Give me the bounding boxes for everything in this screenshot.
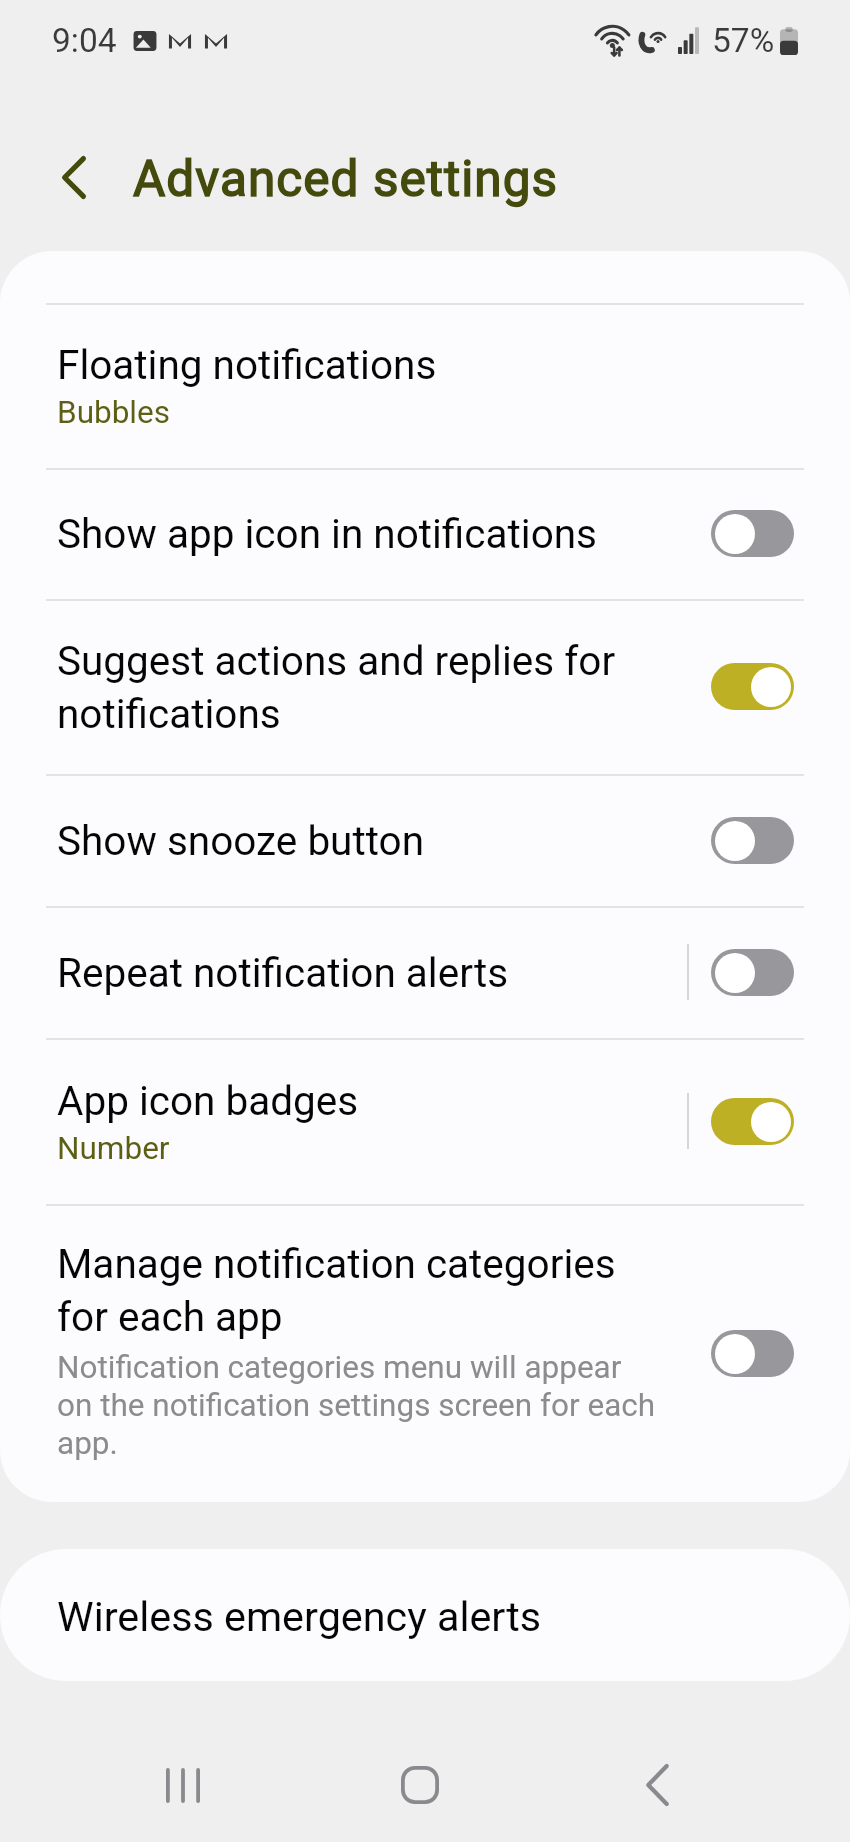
staticText: Advanced settings	[133, 150, 559, 208]
button[interactable]: Switch on	[711, 1098, 794, 1145]
staticText: Show snooze button	[57, 813, 425, 866]
button[interactable]: App icon badges	[0, 1038, 850, 1204]
button[interactable]: Switch off	[711, 1330, 794, 1377]
button[interactable]: Wireless emergency alerts	[0, 1549, 850, 1681]
button[interactable]: Show app icon in notifications	[0, 468, 850, 599]
staticText: Manage notification categories for each …	[57, 1236, 616, 1342]
staticText: Suggest actions and replies for notifica…	[57, 633, 616, 739]
staticText: Floating notifications	[57, 337, 437, 390]
button[interactable]: Repeat notification alerts	[0, 906, 850, 1038]
button[interactable]: Switch off	[711, 817, 794, 864]
staticText: Repeat notification alerts	[57, 945, 509, 998]
button[interactable]: Switch off	[711, 949, 794, 996]
staticText: Bubbles	[57, 394, 170, 430]
staticText: App icon badges	[57, 1073, 359, 1126]
button[interactable]: Manage notification categories for each …	[0, 1204, 850, 1502]
staticText: Wireless emergency alerts	[57, 1593, 542, 1641]
staticText: Show app icon in notifications	[57, 506, 598, 559]
staticText: 57%	[712, 21, 775, 60]
button[interactable]: Home	[370, 1735, 470, 1835]
button[interactable]: Switch off	[711, 510, 794, 557]
staticText: Number	[57, 1130, 170, 1166]
button[interactable]: Suggest actions and replies for notifica…	[0, 599, 850, 774]
button[interactable]: Navigate up	[38, 141, 110, 213]
button[interactable]: Back	[607, 1735, 707, 1835]
staticText: 9:04	[52, 21, 117, 60]
button[interactable]: Switch on	[711, 663, 794, 710]
button[interactable]: Show snooze button	[0, 774, 850, 906]
button[interactable]: Floating notifications	[0, 303, 850, 468]
staticText: Notification categories menu will appear…	[57, 1348, 656, 1462]
button[interactable]: Recent apps	[133, 1735, 233, 1835]
